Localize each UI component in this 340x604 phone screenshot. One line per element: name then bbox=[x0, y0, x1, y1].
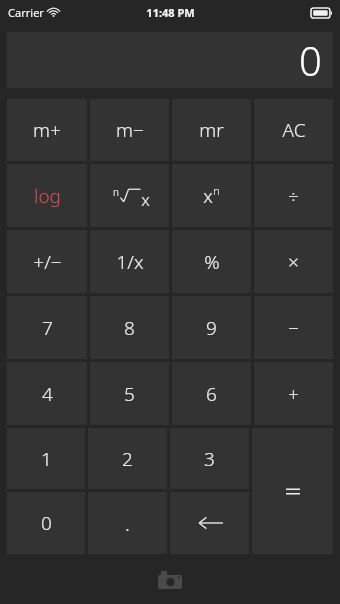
staticText: 0 bbox=[299, 33, 322, 87]
staticText: % bbox=[204, 249, 220, 275]
staticText: n bbox=[213, 183, 220, 198]
button[interactable]: Backspace bbox=[170, 492, 249, 554]
staticText: 9 bbox=[206, 315, 217, 341]
staticText: 1/x bbox=[116, 249, 144, 275]
staticText: + bbox=[288, 381, 299, 407]
button[interactable]: 9 bbox=[172, 296, 251, 359]
staticText: 6 bbox=[206, 381, 217, 407]
staticText: 2 bbox=[122, 446, 133, 472]
button[interactable]: log bbox=[7, 164, 87, 227]
staticText: x bbox=[203, 183, 213, 209]
button[interactable]: 8 bbox=[90, 296, 169, 359]
staticText: n bbox=[113, 185, 119, 199]
staticText: 4 bbox=[42, 381, 53, 407]
button[interactable]: 5 bbox=[90, 362, 169, 425]
button[interactable] bbox=[252, 428, 333, 554]
button[interactable]: 1 bbox=[7, 428, 85, 489]
staticText: − bbox=[288, 315, 299, 341]
button[interactable]: − bbox=[254, 296, 333, 359]
button[interactable]: x to the power n bbox=[172, 164, 251, 227]
button[interactable]: 0 bbox=[7, 32, 333, 88]
button[interactable]: % bbox=[172, 230, 251, 293]
staticText: m− bbox=[116, 117, 144, 143]
staticText: 8 bbox=[124, 315, 135, 341]
button[interactable]: Camera bbox=[150, 560, 190, 600]
staticText: log bbox=[34, 183, 61, 209]
button[interactable]: mr bbox=[172, 99, 251, 161]
button[interactable]: 4 bbox=[7, 362, 87, 425]
button[interactable]: 7 bbox=[7, 296, 87, 359]
button[interactable]: nth root of x bbox=[90, 164, 169, 227]
button[interactable]: 6 bbox=[172, 362, 251, 425]
button[interactable]: m− bbox=[90, 99, 169, 161]
button[interactable]: 2 bbox=[88, 428, 167, 489]
button[interactable]: m+ bbox=[7, 99, 87, 161]
button[interactable]: +/− bbox=[7, 230, 87, 293]
staticText: 5 bbox=[124, 381, 135, 407]
button[interactable]: . bbox=[88, 492, 167, 554]
staticText: +/− bbox=[33, 249, 62, 275]
staticText: x bbox=[141, 188, 150, 211]
staticText: m+ bbox=[33, 117, 61, 143]
button[interactable]: 1/x bbox=[90, 230, 169, 293]
button[interactable]: + bbox=[254, 362, 333, 425]
staticText: ÷ bbox=[288, 183, 299, 209]
button[interactable]: × bbox=[254, 230, 333, 293]
staticText: × bbox=[288, 249, 299, 275]
button[interactable]: 0 bbox=[7, 492, 85, 554]
staticText: 3 bbox=[204, 446, 215, 472]
staticText: AC bbox=[282, 117, 306, 143]
button[interactable]: 3 bbox=[170, 428, 249, 489]
staticText: 7 bbox=[42, 315, 53, 341]
button[interactable]: ÷ bbox=[254, 164, 333, 227]
button[interactable]: AC bbox=[254, 99, 333, 161]
staticText: 1 bbox=[41, 446, 52, 472]
staticText: . bbox=[125, 510, 130, 537]
staticText: 0 bbox=[41, 510, 52, 536]
staticText: mr bbox=[199, 117, 224, 143]
staticText: 11:48 PM bbox=[146, 5, 195, 20]
staticText: Carrier bbox=[8, 5, 44, 20]
